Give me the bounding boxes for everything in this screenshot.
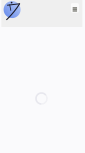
button[interactable]: Menu	[71, 3, 79, 13]
button[interactable]: Home	[1, 0, 23, 22]
